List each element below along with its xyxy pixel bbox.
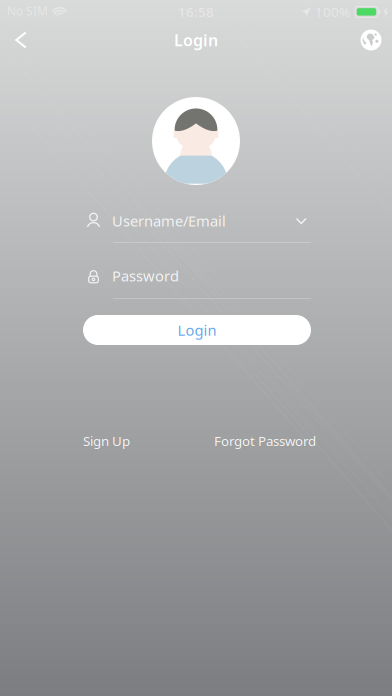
button[interactable]: Sign Up bbox=[83, 432, 130, 450]
staticText: Login bbox=[174, 29, 218, 51]
staticText: No SIM bbox=[7, 3, 48, 19]
staticText: Password bbox=[112, 266, 179, 285]
staticText: Sign Up bbox=[83, 432, 130, 450]
staticText: 16:58 bbox=[178, 3, 214, 21]
staticText: Forgot Password bbox=[214, 432, 316, 450]
button[interactable]: Language bbox=[349, 18, 392, 62]
staticText: Username/Email bbox=[112, 211, 226, 230]
button[interactable]: Login bbox=[83, 315, 311, 345]
staticText: Login bbox=[177, 320, 216, 340]
button[interactable]: Forgot Password bbox=[214, 432, 316, 450]
staticText: 100% bbox=[315, 3, 350, 21]
button[interactable]: Back bbox=[0, 18, 43, 62]
